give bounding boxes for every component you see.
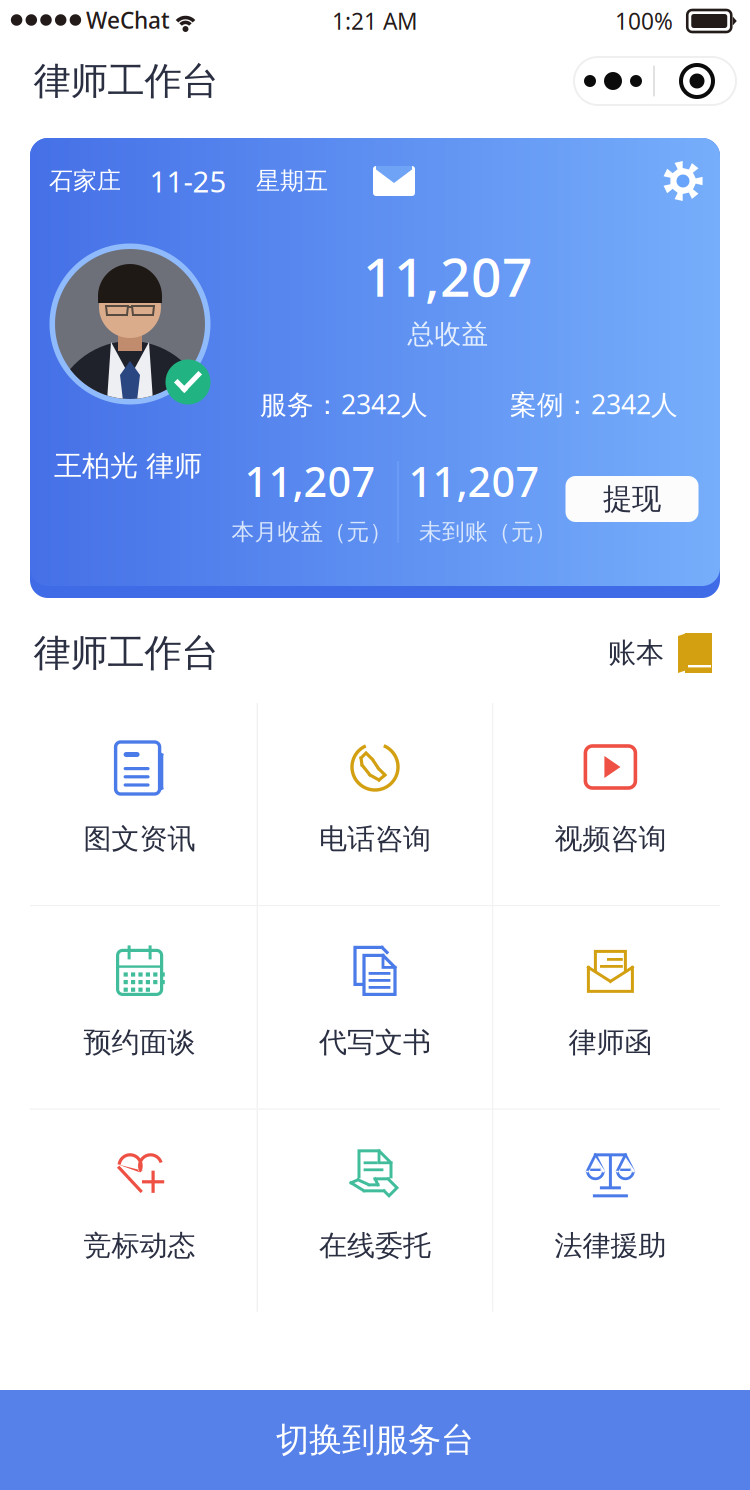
- staticText: 律师工作台: [33, 58, 218, 104]
- staticText: 11,207: [244, 454, 375, 508]
- staticText: 本月收益（元）: [231, 518, 392, 546]
- staticText: 竞标动态: [84, 1229, 196, 1263]
- staticText: 法律援助: [554, 1229, 666, 1263]
- button[interactable]: 律师函: [493, 906, 727, 1108]
- staticText: 律师工作台: [33, 630, 218, 676]
- staticText: 图文资讯: [84, 822, 196, 856]
- button[interactable]: 图文资讯: [23, 703, 257, 905]
- staticText: 代写文书: [319, 1025, 431, 1060]
- staticText: 11,207: [408, 454, 539, 508]
- staticText: 未到账（元）: [419, 518, 557, 546]
- staticText: 1:21 AM: [332, 6, 418, 36]
- button[interactable]: More options: [574, 57, 736, 105]
- button[interactable]: 视频咨询: [493, 703, 727, 905]
- button[interactable]: 代写文书: [258, 906, 492, 1108]
- staticText: 切换到服务台: [276, 1419, 474, 1460]
- staticText: 电话咨询: [319, 822, 431, 856]
- staticText: 律师函: [568, 1025, 652, 1060]
- staticText: 石家庄: [49, 166, 121, 196]
- staticText: 视频咨询: [554, 822, 666, 856]
- staticText: 11-25: [149, 161, 226, 200]
- staticText: 王柏光 律师: [54, 449, 202, 483]
- button[interactable]: 账本: [602, 622, 718, 684]
- button[interactable]: Messages: [359, 153, 429, 209]
- button[interactable]: 提现: [565, 476, 698, 522]
- staticText: 案例：2342人: [510, 386, 678, 422]
- button[interactable]: 法律援助: [493, 1110, 727, 1312]
- staticText: 账本: [608, 636, 664, 670]
- button[interactable]: 在线委托: [258, 1110, 492, 1312]
- staticText: 提现: [603, 481, 661, 517]
- button[interactable]: 竞标动态: [23, 1110, 257, 1312]
- staticText: 11,207: [363, 241, 533, 311]
- button[interactable]: 切换到服务台: [0, 1390, 750, 1490]
- button[interactable]: 电话咨询: [258, 703, 492, 905]
- staticText: 星期五: [256, 166, 328, 196]
- staticText: WeChat: [86, 5, 170, 35]
- staticText: 总收益: [407, 318, 488, 350]
- staticText: 在线委托: [319, 1229, 431, 1263]
- staticText: 100%: [615, 6, 673, 36]
- staticText: 预约面谈: [84, 1025, 196, 1060]
- staticText: 服务：2342人: [260, 386, 428, 422]
- button[interactable]: 预约面谈: [23, 906, 257, 1108]
- button[interactable]: Settings: [655, 153, 711, 209]
